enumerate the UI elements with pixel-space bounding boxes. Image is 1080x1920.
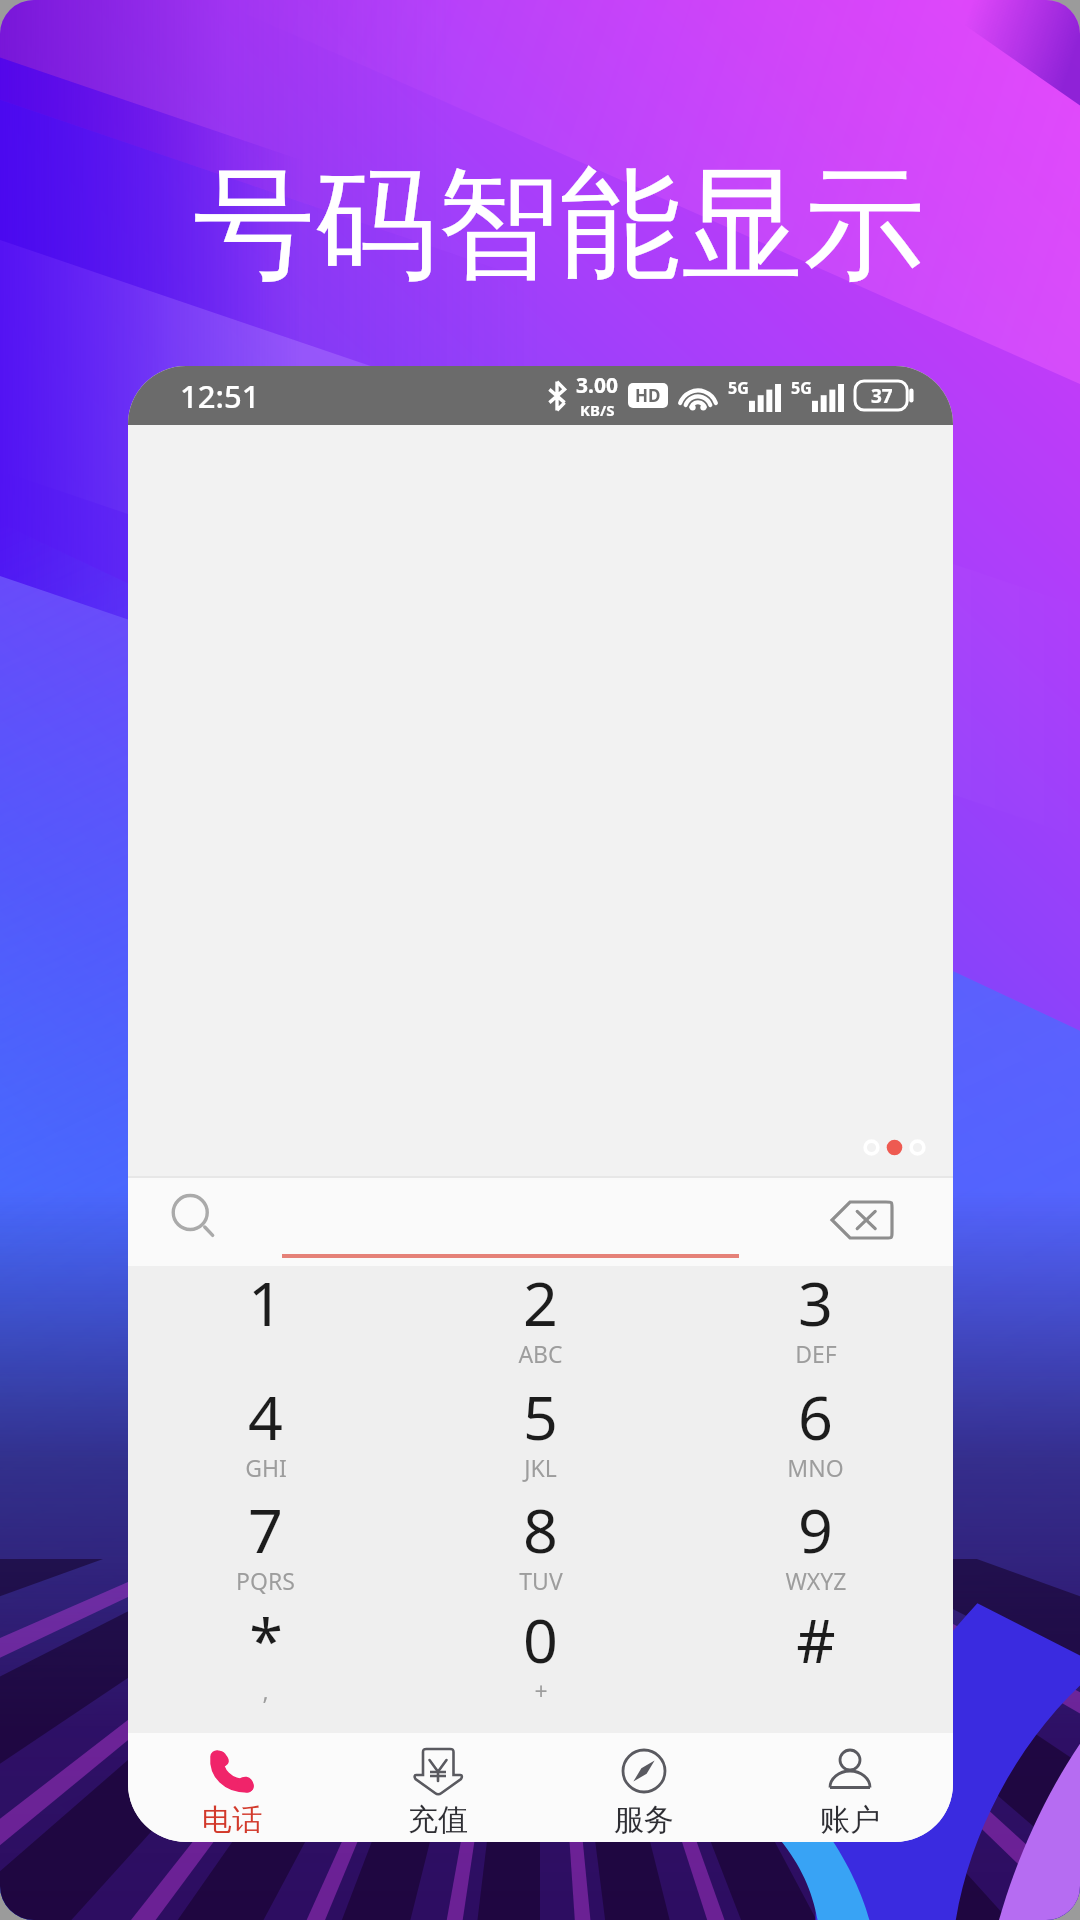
staticText: # xyxy=(796,1598,836,1681)
staticText: 5G xyxy=(791,377,812,399)
button[interactable]: Search xyxy=(157,1181,226,1250)
button[interactable]: 9 xyxy=(678,1477,953,1589)
button[interactable]: Backspace xyxy=(818,1176,906,1264)
staticText: 5G xyxy=(728,377,749,399)
staticText: GHI xyxy=(245,1452,287,1483)
button[interactable]: 6 xyxy=(678,1364,953,1476)
button[interactable]: 电话 xyxy=(128,1733,335,1842)
staticText: ABC xyxy=(518,1338,563,1369)
staticText: 9 xyxy=(798,1488,833,1571)
staticText: + xyxy=(534,1675,548,1706)
staticText: 号码智能显示 xyxy=(193,149,925,303)
staticText: 服务 xyxy=(614,1801,674,1839)
staticText: KB/S xyxy=(580,400,615,420)
staticText: MNO xyxy=(787,1452,844,1483)
staticText: * xyxy=(249,1598,283,1681)
button[interactable]: 7 xyxy=(128,1477,403,1589)
staticText: 账户 xyxy=(820,1801,880,1839)
staticText: 3 xyxy=(798,1261,833,1344)
staticText: , xyxy=(262,1675,269,1706)
button[interactable]: 4 xyxy=(128,1364,403,1476)
button[interactable]: 3 xyxy=(678,1250,953,1362)
staticText: HD xyxy=(635,384,661,407)
button[interactable]: 2 xyxy=(403,1250,678,1362)
button[interactable]: 1 xyxy=(128,1250,403,1362)
button[interactable]: 5 xyxy=(403,1364,678,1476)
staticText: WXYZ xyxy=(785,1565,847,1596)
staticText: TUV xyxy=(519,1565,563,1596)
staticText: 3.00 xyxy=(576,371,618,400)
staticText: 5 xyxy=(523,1375,558,1458)
button[interactable]: 服务 xyxy=(541,1733,747,1842)
button[interactable]: * xyxy=(128,1587,403,1699)
staticText: JKL xyxy=(524,1452,557,1483)
button[interactable]: 充值 xyxy=(335,1733,541,1842)
staticText: PQRS xyxy=(236,1565,295,1596)
staticText: 电话 xyxy=(202,1801,262,1839)
button[interactable]: # xyxy=(678,1587,953,1699)
staticText: 8 xyxy=(523,1488,558,1571)
staticText: 12:51 xyxy=(180,375,260,417)
staticText: 2 xyxy=(523,1261,558,1344)
staticText: 37 xyxy=(871,383,893,409)
staticText: 7 xyxy=(248,1488,283,1571)
button[interactable]: 账户 xyxy=(747,1733,953,1842)
button[interactable]: 0 xyxy=(403,1587,678,1699)
button[interactable]: 8 xyxy=(403,1477,678,1589)
staticText: 6 xyxy=(798,1375,833,1458)
staticText: DEF xyxy=(795,1338,837,1369)
staticText: 充值 xyxy=(408,1801,468,1839)
staticText: 1 xyxy=(248,1261,283,1344)
staticText: 4 xyxy=(248,1375,283,1458)
staticText: 0 xyxy=(523,1598,558,1681)
